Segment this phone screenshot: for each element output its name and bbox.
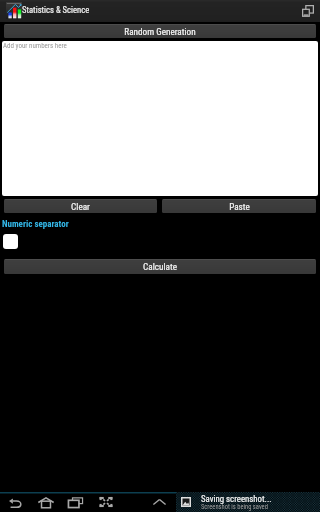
staticText: Screenshot is being saved xyxy=(201,503,268,511)
staticText: Paste xyxy=(229,201,250,212)
button[interactable]: Clear xyxy=(4,199,157,213)
staticText: Random Generation xyxy=(124,26,196,37)
button[interactable]: Add your numbers here xyxy=(2,41,318,196)
button[interactable]: Screenshot xyxy=(90,492,121,512)
staticText: Add your numbers here xyxy=(3,42,67,50)
button[interactable]: Home xyxy=(31,492,60,512)
button[interactable]: Numeric separator checkbox xyxy=(3,234,18,249)
button[interactable]: Paste xyxy=(162,199,316,213)
button[interactable]: Recents xyxy=(60,492,90,512)
staticText: Clear xyxy=(71,201,90,212)
button[interactable]: Random Generation xyxy=(4,24,316,38)
staticText: Saving screenshot... xyxy=(201,494,272,504)
staticText: Calculate xyxy=(143,261,177,272)
button[interactable]: Calculate xyxy=(4,259,316,274)
button[interactable]: Back xyxy=(0,492,31,512)
button[interactable]: Expand status bar xyxy=(121,492,176,512)
button[interactable]: Multi window xyxy=(299,2,316,19)
staticText: Statistics & Science xyxy=(22,5,90,15)
staticText: Numeric separator xyxy=(2,219,69,230)
button[interactable]: Saving screenshot... xyxy=(176,492,320,512)
